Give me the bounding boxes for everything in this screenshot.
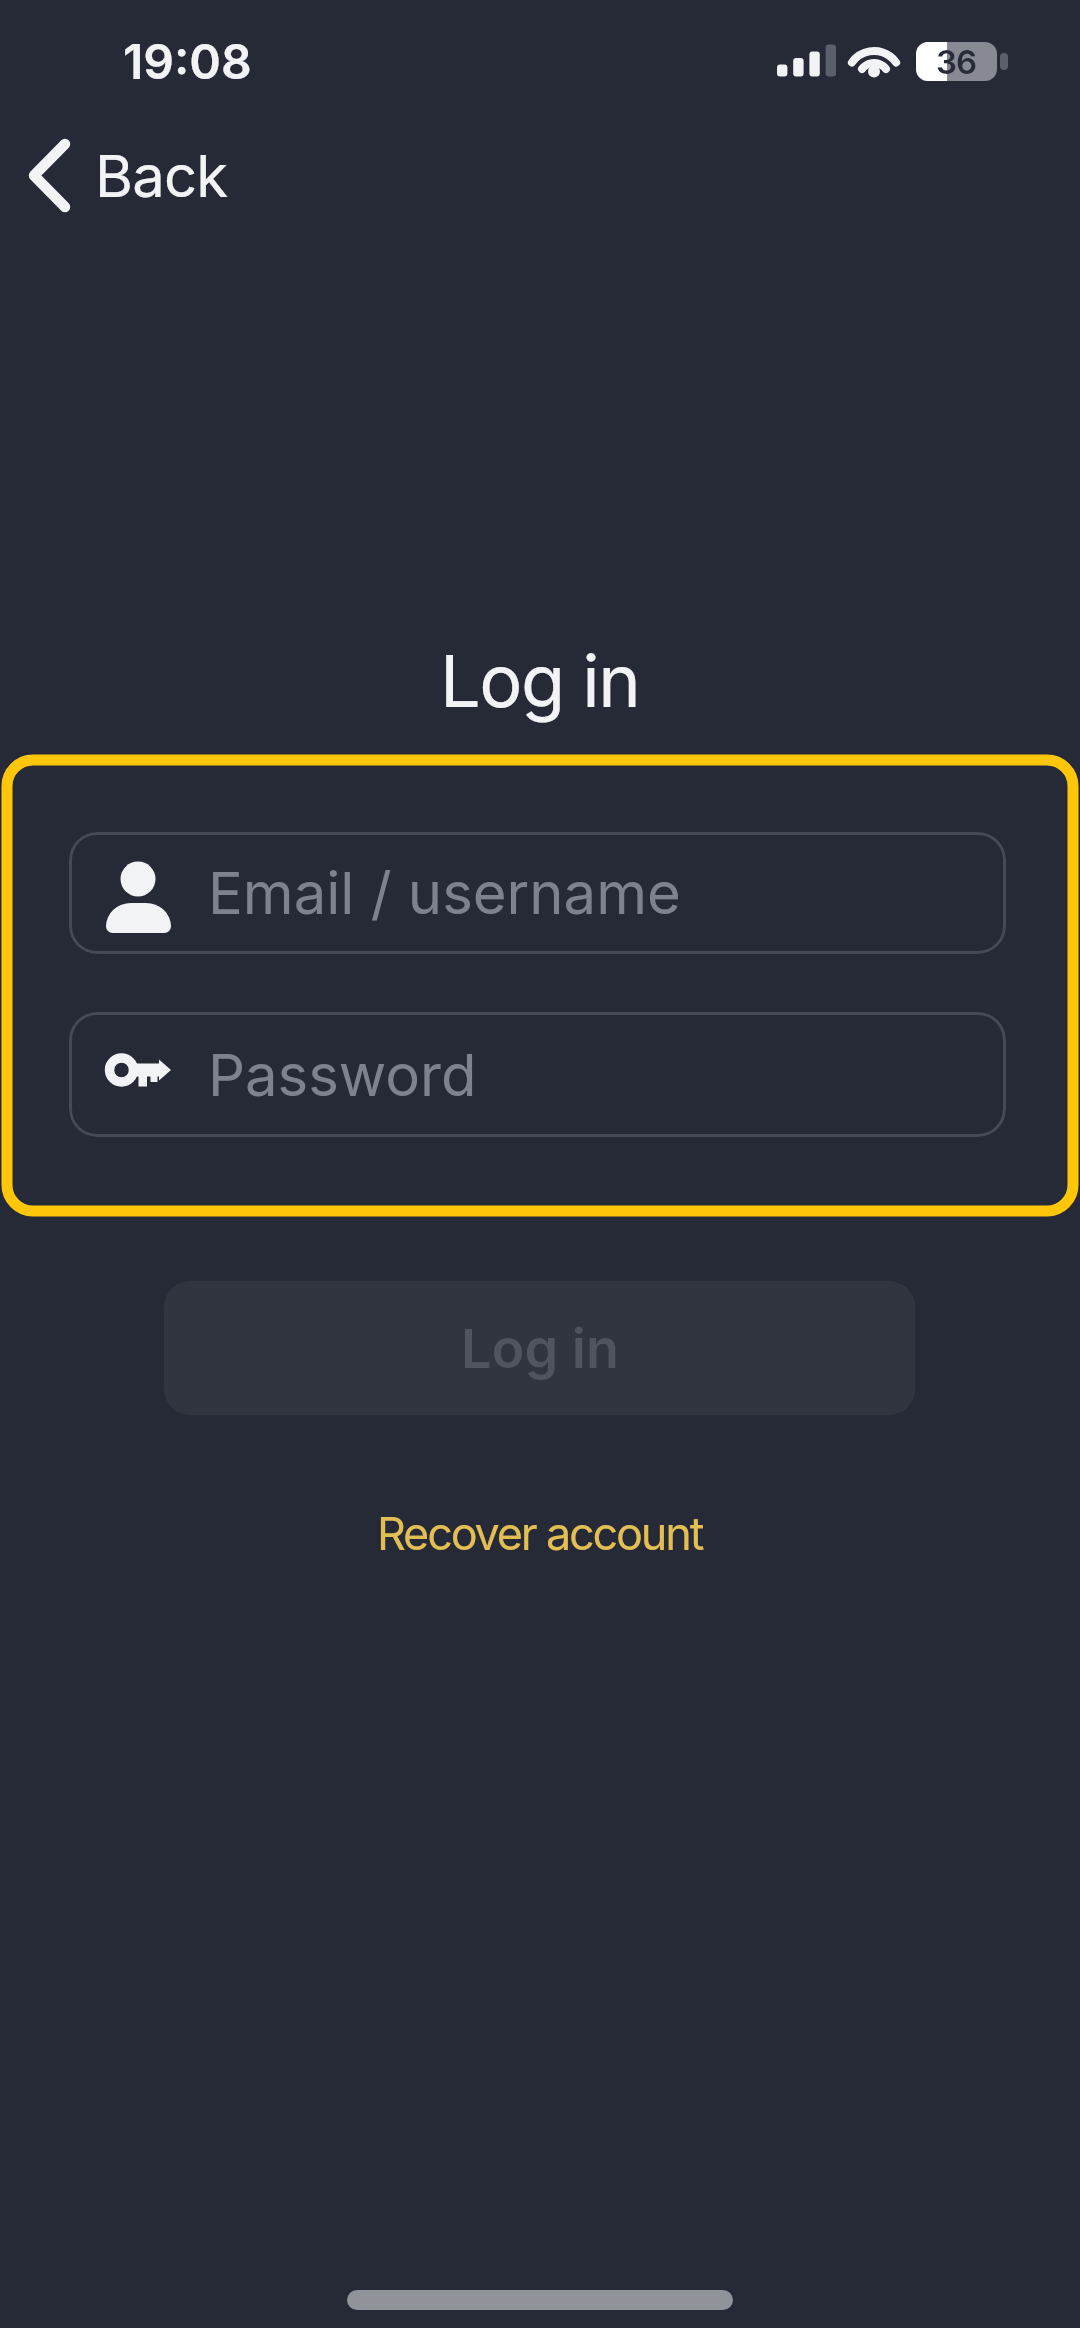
staticText: Log in xyxy=(461,1316,619,1381)
button[interactable]: Password xyxy=(69,1012,1006,1137)
staticText: Back xyxy=(95,141,228,211)
button[interactable]: Back xyxy=(10,130,240,222)
staticText: 19:08 xyxy=(123,32,252,90)
staticText: 36 xyxy=(936,42,977,81)
staticText: Recover account xyxy=(377,1506,703,1560)
button[interactable]: Email / username xyxy=(69,832,1006,954)
button[interactable]: Recover account xyxy=(365,1500,715,1566)
staticText: Log in xyxy=(440,637,640,724)
staticText: Password xyxy=(208,1040,477,1110)
button[interactable]: Log in xyxy=(164,1281,915,1415)
staticText: Email / username xyxy=(208,858,681,928)
